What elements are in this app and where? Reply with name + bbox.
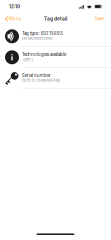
button[interactable]: Technologies available (0, 47, 111, 68)
staticText: 12:10 (9, 4, 20, 9)
staticText: Tag detail (44, 16, 67, 22)
staticText: Technologies available (22, 52, 66, 57)
button[interactable]: Save (91, 14, 111, 23)
staticText: Tag type : ISO 15693 (22, 31, 63, 36)
staticText: Serial number (22, 73, 51, 78)
staticText: EM Microelectronic (22, 36, 53, 41)
staticText: Save (95, 16, 105, 21)
staticText: Menu (9, 16, 22, 21)
staticText: Type V (22, 57, 34, 62)
button[interactable]: Tag type : ISO 15693 (0, 26, 111, 47)
staticText: E0:1E:3C:01:49:09:F8:86 (22, 78, 60, 83)
button[interactable]: Serial number (0, 68, 111, 89)
button[interactable]: Menu (0, 14, 26, 23)
